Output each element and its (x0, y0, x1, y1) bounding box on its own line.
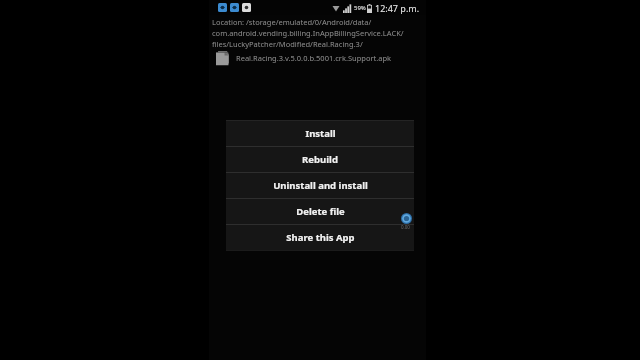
button[interactable]: Share this App (226, 225, 414, 250)
staticText: Uninstall and install (273, 179, 368, 192)
button[interactable]: File (212, 48, 426, 68)
other: File (216, 50, 229, 66)
staticText: Delete file (296, 205, 345, 218)
staticText: Real.Racing.3.v.5.0.0.b.5001.crk.Support… (236, 53, 392, 63)
staticText: 59% (354, 4, 366, 12)
button[interactable]: Install (226, 121, 414, 146)
staticText: Rebuild (302, 153, 338, 166)
staticText: 12:47 p.m. (375, 2, 420, 14)
button[interactable]: Uninstall and install (226, 173, 414, 198)
staticText: Location: /storage/emulated/0/Android/da… (212, 17, 372, 27)
staticText: Share this App (286, 231, 355, 244)
button[interactable]: Rebuild (226, 147, 414, 172)
staticText: files/LuckyPatcher/Modified/Real.Racing.… (212, 39, 363, 49)
staticText: com.android.vending.billing.InAppBilling… (212, 28, 404, 38)
other: Scroll indicator (401, 213, 417, 230)
staticText: 0.00 (401, 224, 410, 230)
staticText: Install (305, 127, 336, 140)
button[interactable]: Delete file (226, 199, 414, 224)
